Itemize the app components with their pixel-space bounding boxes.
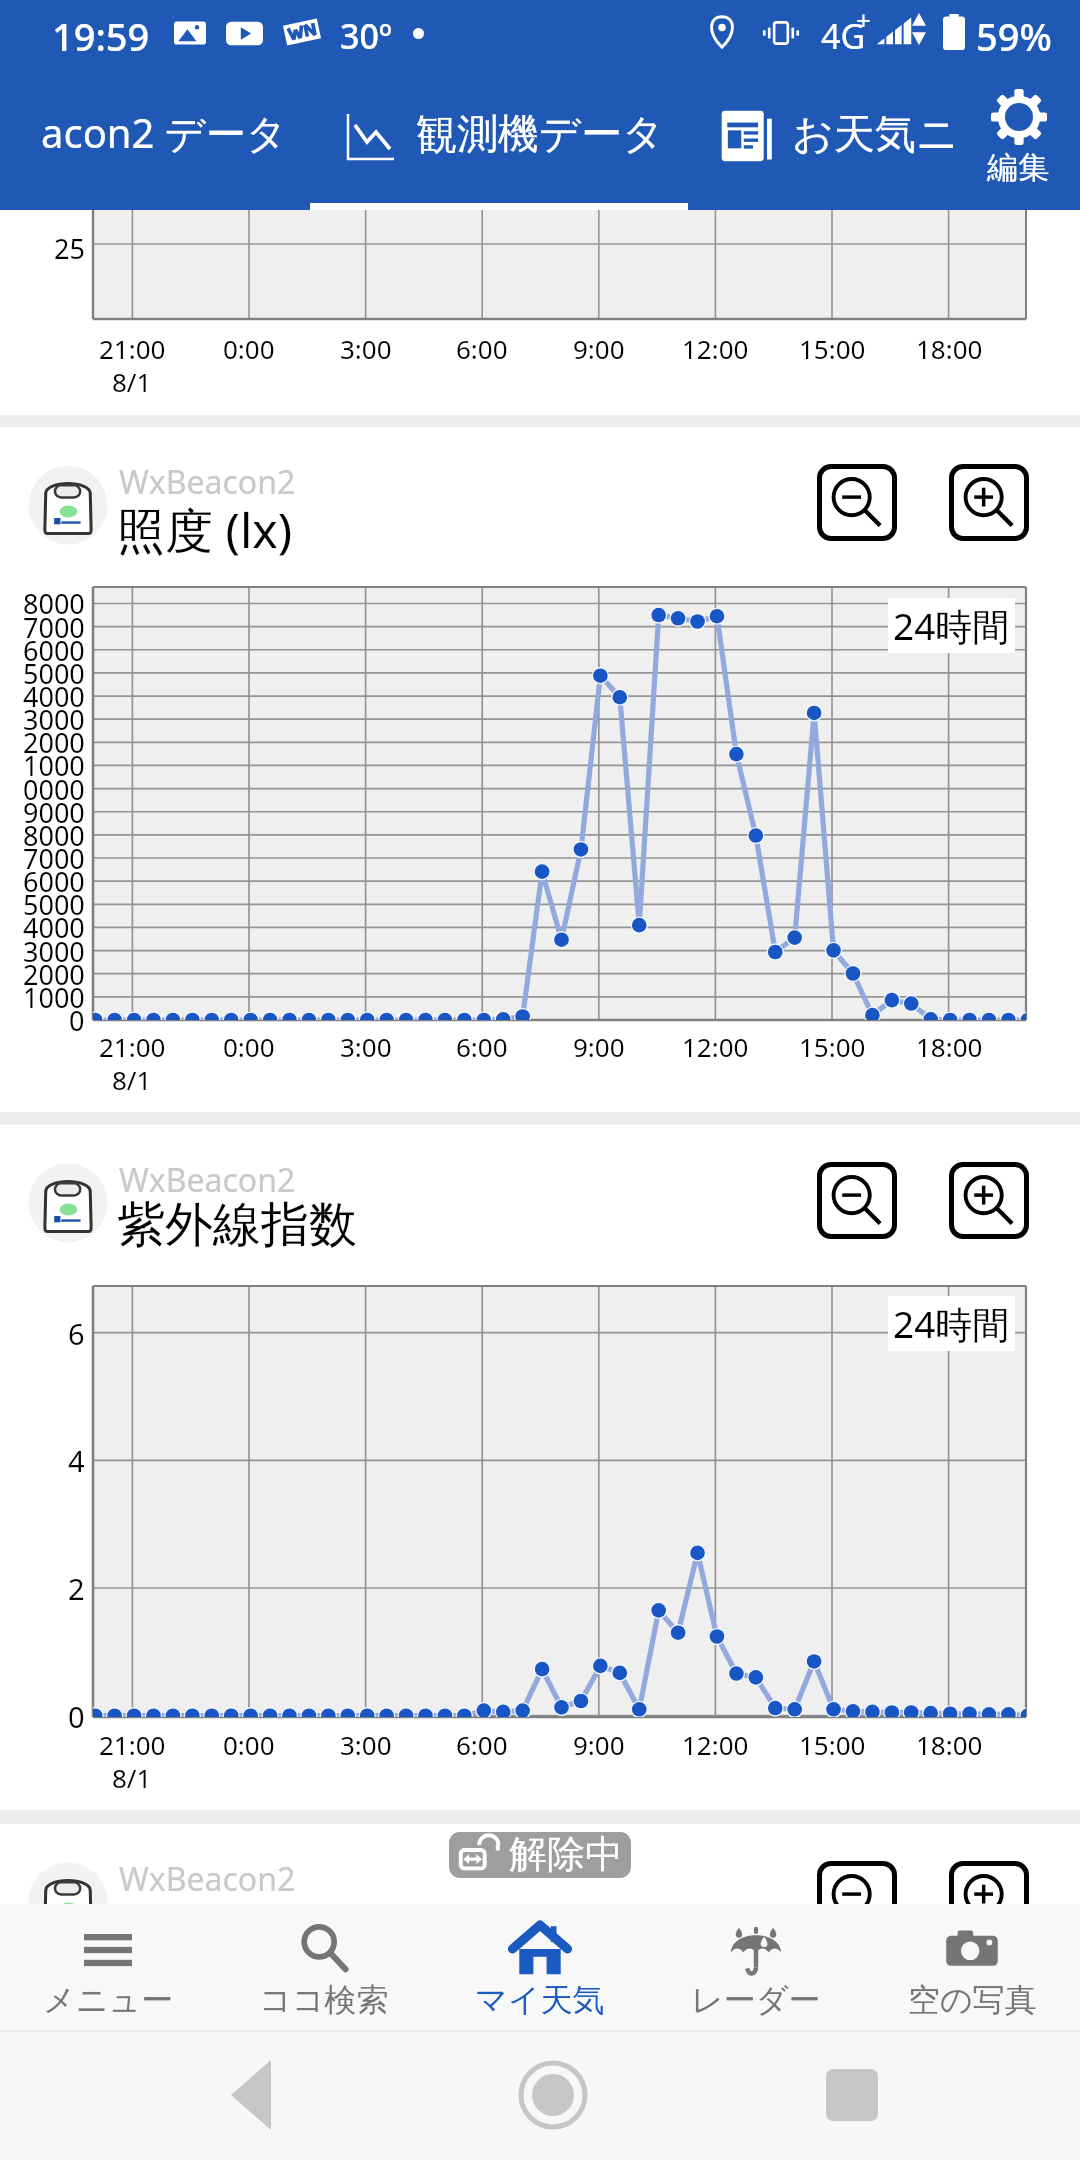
staticText: 4000 bbox=[23, 909, 85, 946]
staticText: 0 bbox=[68, 1697, 85, 1736]
button[interactable]: acon2 データ bbox=[0, 66, 310, 210]
staticText: 8000 bbox=[23, 817, 85, 854]
staticText: 空の写真 bbox=[908, 1980, 1037, 2020]
staticText: 30º bbox=[340, 13, 392, 59]
staticText: 24時間 bbox=[893, 1298, 1010, 1349]
button[interactable]: お天気ニ bbox=[688, 66, 992, 210]
staticText: 1000 bbox=[23, 747, 85, 784]
staticText: 0 bbox=[69, 1002, 85, 1039]
button[interactable]: ココ検索 bbox=[216, 1904, 432, 2030]
staticText: + bbox=[856, 2, 871, 37]
button[interactable]: 観測機データ bbox=[310, 66, 688, 210]
staticText: 3:00 bbox=[340, 1029, 392, 1064]
staticText: 0:00 bbox=[223, 1029, 275, 1064]
staticText: acon2 データ bbox=[41, 105, 287, 160]
button[interactable]: 縮小 bbox=[817, 464, 897, 541]
staticText: 19:59 bbox=[52, 10, 150, 62]
staticText: 8/1 bbox=[112, 364, 152, 399]
staticText: 2000 bbox=[23, 724, 85, 761]
staticText: 12:00 bbox=[682, 1029, 749, 1064]
staticText: 9:00 bbox=[573, 1727, 625, 1762]
staticText: 編集 bbox=[987, 148, 1049, 187]
staticText: 12:00 bbox=[682, 331, 749, 366]
staticText: 25 bbox=[54, 230, 85, 267]
staticText: 6:00 bbox=[456, 1727, 508, 1762]
staticText: ココ検索 bbox=[259, 1980, 389, 2020]
button[interactable]: 縮小 bbox=[817, 1861, 897, 1938]
staticText: 6000 bbox=[23, 632, 85, 669]
staticText: 観測機データ bbox=[416, 109, 664, 161]
staticText: 18:00 bbox=[916, 1727, 983, 1762]
staticText: WxBeacon2 bbox=[119, 1857, 296, 1901]
staticText: 21:00 bbox=[99, 1029, 166, 1064]
staticText: お天気ニ bbox=[792, 109, 958, 161]
staticText: 3:00 bbox=[340, 331, 392, 366]
staticText: 59% bbox=[976, 10, 1052, 62]
staticText: 8/1 bbox=[112, 1760, 152, 1795]
staticText: 7000 bbox=[23, 609, 85, 646]
staticText: 2000 bbox=[23, 956, 85, 993]
button[interactable]: マイ天気 bbox=[432, 1904, 648, 2030]
staticText: 0000 bbox=[23, 771, 85, 808]
staticText: レーダー bbox=[691, 1980, 821, 2020]
button[interactable]: 解除中 bbox=[449, 1832, 631, 1878]
button[interactable]: 拡大 bbox=[949, 464, 1029, 541]
button[interactable]: 拡大 bbox=[949, 1861, 1029, 1938]
button[interactable]: 空の写真 bbox=[864, 1904, 1080, 2030]
staticText: 8000 bbox=[23, 585, 85, 622]
staticText: 12:00 bbox=[682, 1727, 749, 1762]
staticText: 21:00 bbox=[99, 331, 166, 366]
staticText: 3000 bbox=[23, 933, 85, 970]
button[interactable]: 縮小 bbox=[817, 1162, 897, 1239]
button[interactable]: 拡大 bbox=[949, 1162, 1029, 1239]
staticText: 照度 (lx) bbox=[117, 497, 293, 563]
button[interactable]: 編集 bbox=[986, 66, 1080, 210]
staticText: 9:00 bbox=[573, 331, 625, 366]
staticText: 解除中 bbox=[509, 1832, 623, 1876]
staticText: 5000 bbox=[23, 886, 85, 923]
staticText: メニュー bbox=[43, 1980, 174, 2020]
staticText: 18:00 bbox=[916, 1029, 983, 1064]
staticText: 4G bbox=[821, 13, 866, 59]
staticText: 3:00 bbox=[340, 1727, 392, 1762]
staticText: 0:00 bbox=[223, 1727, 275, 1762]
staticText: 4 bbox=[68, 1441, 85, 1480]
staticText: 9:00 bbox=[573, 1029, 625, 1064]
staticText: 18:00 bbox=[916, 331, 983, 366]
staticText: WxBeacon2 bbox=[119, 1158, 296, 1202]
staticText: 24時間 bbox=[893, 600, 1010, 651]
staticText: 4000 bbox=[23, 678, 85, 715]
staticText: 15:00 bbox=[799, 1029, 866, 1064]
staticText: 6:00 bbox=[456, 1029, 508, 1064]
staticText: 8/1 bbox=[112, 1062, 152, 1097]
button[interactable]: メニュー bbox=[0, 1904, 216, 2030]
staticText: 9000 bbox=[23, 794, 85, 831]
staticText: 6:00 bbox=[456, 331, 508, 366]
staticText: 7000 bbox=[23, 840, 85, 877]
staticText: 6000 bbox=[23, 863, 85, 900]
staticText: 紫外線指数 bbox=[117, 1195, 357, 1255]
staticText: 15:00 bbox=[799, 1727, 866, 1762]
staticText: マイ天気 bbox=[475, 1980, 605, 2020]
staticText: 15:00 bbox=[799, 331, 866, 366]
staticText: 21:00 bbox=[99, 1727, 166, 1762]
staticText: 2 bbox=[68, 1569, 85, 1608]
staticText: 1000 bbox=[23, 979, 85, 1016]
staticText: WxBeacon2 bbox=[119, 460, 296, 504]
staticText: 0:00 bbox=[223, 331, 275, 366]
staticText: 6 bbox=[68, 1314, 85, 1353]
staticText: 5000 bbox=[23, 655, 85, 692]
button[interactable]: レーダー bbox=[648, 1904, 864, 2030]
staticText: 3000 bbox=[23, 701, 85, 738]
